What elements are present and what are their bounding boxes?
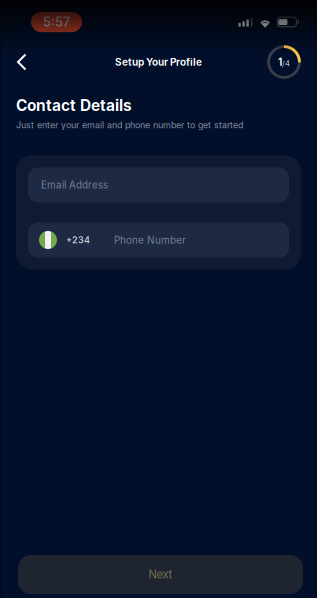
button[interactable]: Email Address — [28, 167, 289, 202]
staticText: +234 — [66, 234, 90, 245]
staticText: Email Address — [41, 179, 108, 191]
button[interactable]: Step 1 of 4 — [265, 40, 303, 84]
staticText: Phone Number — [114, 234, 186, 246]
staticText: Setup Your Profile — [115, 56, 202, 68]
staticText: 5:57 — [43, 14, 70, 30]
staticText: 1 — [278, 56, 282, 68]
staticText: Contact Details — [16, 96, 132, 115]
staticText: /4 — [282, 59, 290, 68]
button[interactable]: Back — [3, 40, 41, 84]
staticText: Just enter your email and phone number t… — [16, 120, 243, 130]
button[interactable]: +234 — [28, 222, 289, 257]
button[interactable]: Next — [18, 555, 303, 594]
staticText: Next — [148, 568, 172, 581]
